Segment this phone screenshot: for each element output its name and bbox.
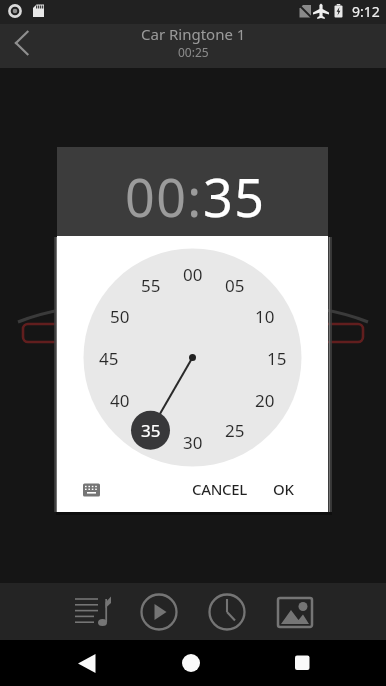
staticText: OK — [273, 479, 294, 499]
button[interactable] — [0, 24, 44, 68]
button[interactable]: CANCEL — [180, 476, 260, 502]
button[interactable] — [140, 593, 178, 631]
staticText: 25 — [225, 419, 245, 441]
button[interactable] — [208, 593, 246, 631]
staticText: 10 — [255, 305, 275, 327]
button[interactable] — [128, 640, 257, 686]
staticText: CANCEL — [192, 479, 248, 499]
staticText: 55 — [141, 274, 161, 296]
staticText: Car Ringtone 1 — [141, 24, 246, 44]
button[interactable] — [276, 593, 314, 631]
staticText: 30 — [183, 431, 203, 453]
staticText: 40 — [110, 389, 130, 411]
staticText: 05 — [225, 274, 245, 296]
staticText: 45 — [99, 347, 119, 369]
staticText: 00:25 — [178, 44, 209, 60]
staticText: 35 — [203, 161, 266, 232]
button[interactable] — [83, 480, 103, 500]
button[interactable] — [72, 593, 110, 631]
staticText: 00 — [183, 263, 203, 285]
staticText: 15 — [267, 347, 287, 369]
staticText: 9:12 — [352, 2, 380, 21]
button[interactable]: OK — [258, 476, 308, 502]
staticText: 50 — [110, 305, 130, 327]
button[interactable] — [0, 640, 128, 686]
staticText: 35 — [141, 419, 161, 441]
staticText: 20 — [255, 389, 275, 411]
button[interactable] — [257, 640, 386, 686]
staticText: 00: — [125, 161, 203, 232]
